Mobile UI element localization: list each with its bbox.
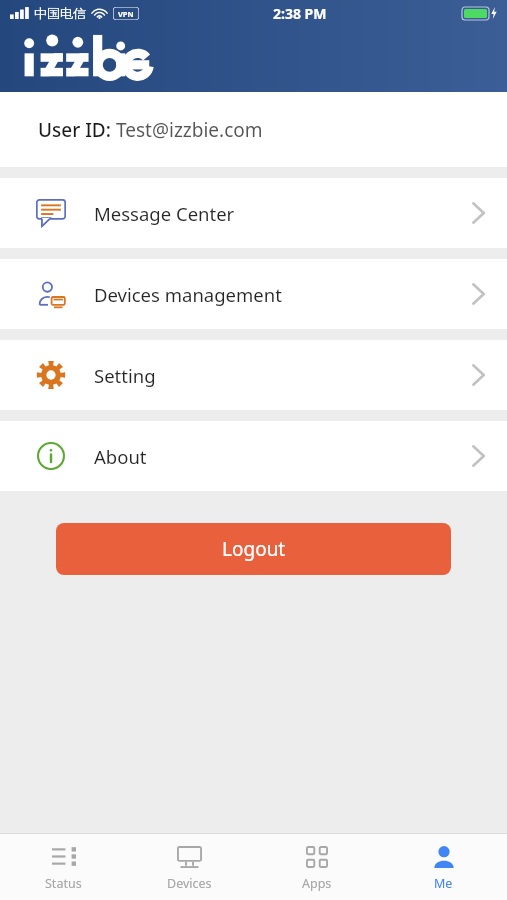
staticText: Apps xyxy=(302,875,332,892)
staticText: 中国电信 xyxy=(34,5,86,21)
staticText: VPN xyxy=(118,9,134,19)
button[interactable]: Devices management xyxy=(0,259,507,329)
staticText: About xyxy=(94,444,147,469)
staticText: Me xyxy=(434,875,453,892)
button[interactable]: About xyxy=(0,421,507,491)
staticText: User ID: xyxy=(38,117,116,143)
staticText: Test@izzbie.com xyxy=(116,117,263,143)
staticText: Status xyxy=(45,875,82,892)
button[interactable]: Message Center xyxy=(0,178,507,248)
button[interactable]: Me xyxy=(380,837,507,898)
staticText: Setting xyxy=(94,363,156,388)
staticText: Devices xyxy=(167,875,212,892)
staticText: Devices management xyxy=(94,282,282,307)
button[interactable]: Status xyxy=(0,837,126,898)
button[interactable]: Apps xyxy=(253,837,380,898)
button[interactable]: Setting xyxy=(0,340,507,410)
staticText: 2:38 PM xyxy=(273,4,327,23)
button[interactable]: Logout xyxy=(56,523,451,575)
button[interactable]: Devices xyxy=(126,837,253,898)
staticText: Message Center xyxy=(94,201,235,226)
staticText: Logout xyxy=(222,536,286,562)
